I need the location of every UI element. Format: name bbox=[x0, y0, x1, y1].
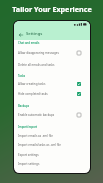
button[interactable]: Import emails as .eml file bbox=[14, 133, 90, 138]
staticText: Tailor Your Experience bbox=[12, 4, 92, 14]
button[interactable]: Back bbox=[17, 31, 24, 38]
staticText: Import/export bbox=[18, 125, 81, 129]
button[interactable]: Export settings bbox=[14, 152, 90, 157]
button[interactable]: Allow creating tasks bbox=[14, 81, 90, 86]
staticText: Import settings bbox=[18, 162, 81, 166]
button[interactable]: Enable automatic backups bbox=[14, 112, 90, 117]
staticText: Hide completed tasks bbox=[18, 92, 77, 96]
staticText: Delete all emails and tasks bbox=[18, 63, 81, 67]
button[interactable]: Hide completed tasks bbox=[14, 91, 90, 96]
staticText: Import emails/tasks as .xml file bbox=[18, 143, 81, 147]
staticText: Allow creating tasks bbox=[18, 82, 77, 86]
staticText: Enable automatic backups bbox=[18, 113, 77, 117]
staticText: Import emails as .eml file bbox=[18, 134, 81, 138]
staticText: Settings bbox=[26, 31, 43, 37]
staticText: Backups bbox=[18, 104, 81, 108]
button[interactable]: Delete all emails and tasks bbox=[14, 62, 90, 67]
button[interactable]: Allow disappearing messages bbox=[14, 50, 90, 55]
button[interactable]: Import emails/tasks as .xml file bbox=[14, 142, 90, 147]
staticText: Export settings bbox=[18, 153, 81, 157]
staticText: Tasks bbox=[18, 74, 81, 78]
staticText: Chat and emails bbox=[18, 41, 81, 45]
staticText: Allow disappearing messages bbox=[18, 51, 77, 55]
button[interactable]: Import settings bbox=[14, 161, 90, 166]
